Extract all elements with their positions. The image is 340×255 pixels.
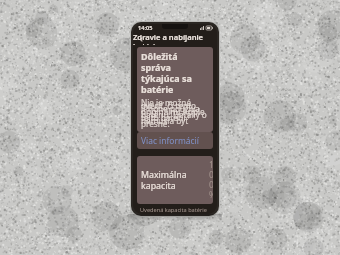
button[interactable]: Späť — [136, 34, 146, 44]
staticText: Nie je možné overiť, či tento iPhone pou… — [141, 97, 209, 129]
staticText: Uvedená kapacita batérie vztiahnutá ku k… — [140, 206, 210, 214]
staticText: Viac informácií — [141, 135, 199, 146]
button[interactable]: Maximálna kapacita — [137, 156, 213, 204]
staticText: Dôležitá správa týkajúca sa batérie — [141, 50, 209, 95]
button[interactable]: Viac informácií — [137, 132, 213, 149]
staticText: Maximálna kapacita — [141, 169, 209, 192]
staticText: 14:05 — [138, 24, 153, 32]
staticText: Zdravie a nabíjanie batérie — [133, 32, 217, 45]
